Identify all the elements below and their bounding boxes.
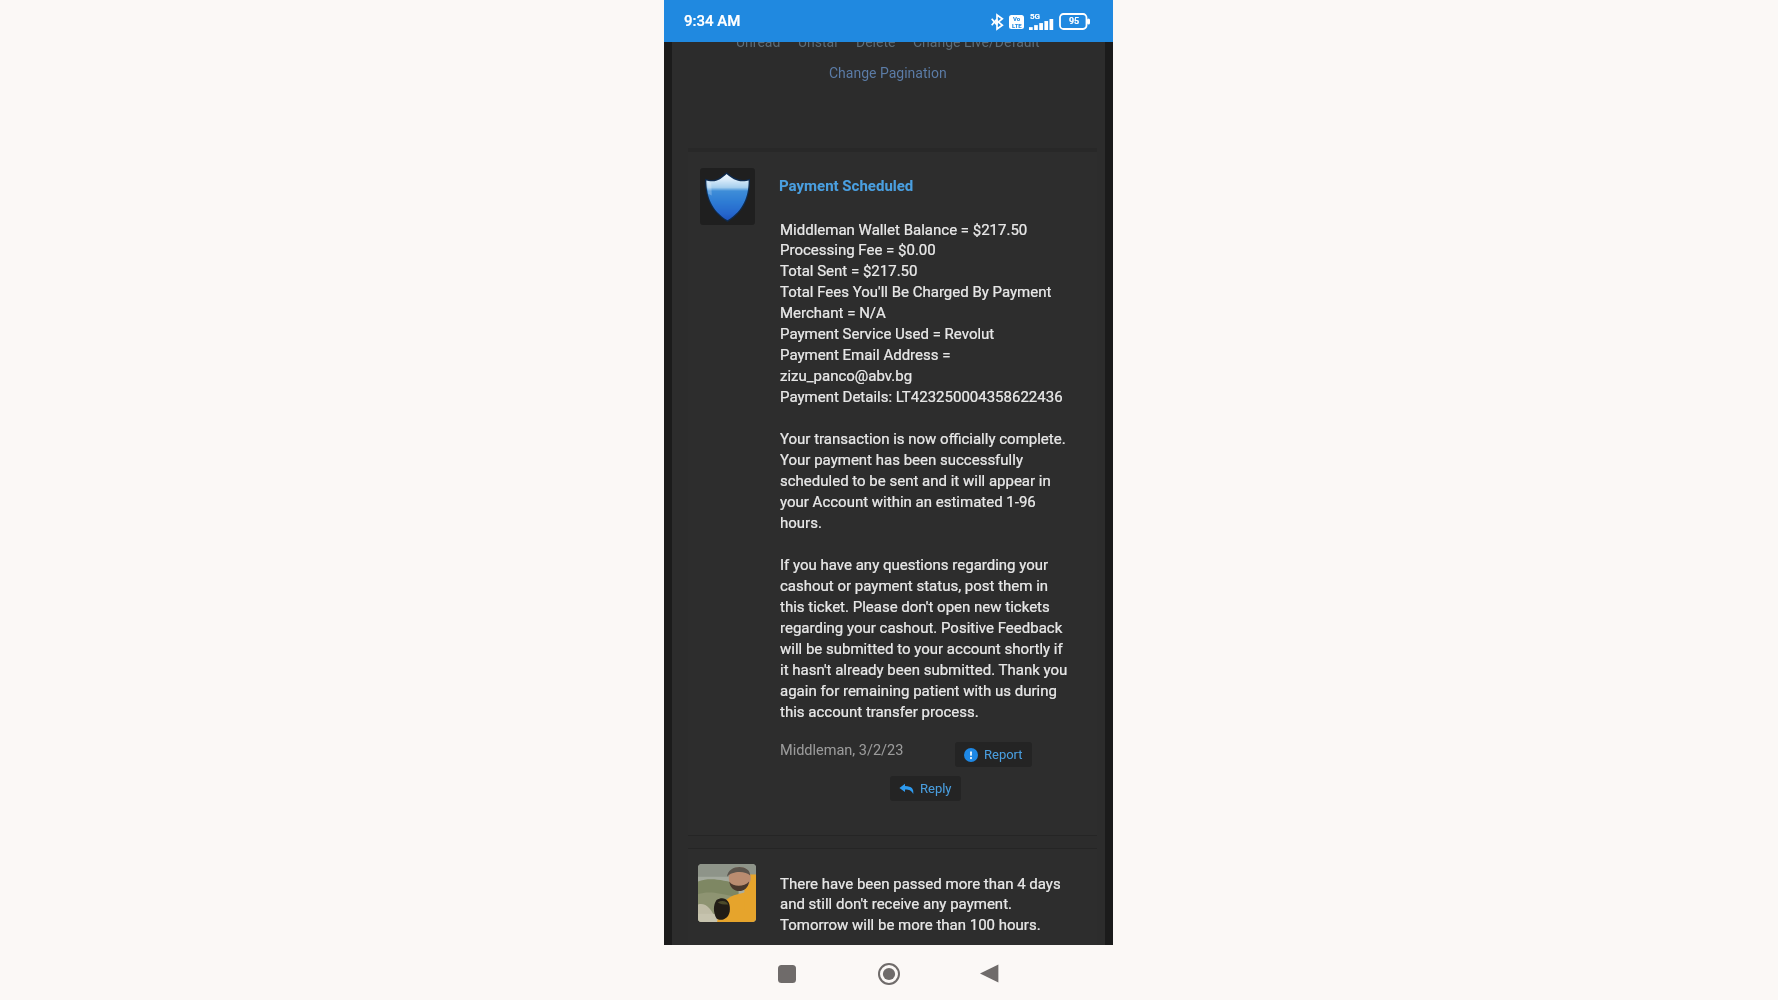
button[interactable]: Reply: [890, 776, 961, 801]
staticText: Reply: [920, 781, 952, 796]
button[interactable]: Recents: [765, 952, 808, 995]
staticText: 9:34 AM: [684, 12, 741, 30]
button[interactable]: Middleman profile picture: [700, 168, 755, 225]
staticText: 95: [1069, 16, 1080, 27]
button[interactable]: Unread: [736, 34, 781, 50]
button[interactable]: There have been passed more than 4 days …: [780, 875, 1061, 934]
staticText: 5G: [1030, 12, 1040, 21]
staticText: LTE: [1012, 22, 1022, 29]
button[interactable]: Middleman, 3/2/23: [780, 742, 904, 759]
staticText: Vo: [1013, 15, 1021, 22]
button[interactable]: Home: [867, 952, 910, 995]
button[interactable]: Change Live/Default: [913, 34, 1040, 50]
button[interactable]: Back: [967, 952, 1010, 995]
staticText: Report: [984, 747, 1023, 762]
button[interactable]: User profile picture: [698, 864, 756, 922]
button[interactable]: Change Pagination: [829, 65, 947, 81]
button[interactable]: Delete: [856, 34, 896, 50]
button[interactable]: Unstar: [798, 34, 839, 50]
button[interactable]: Payment Scheduled: [779, 177, 914, 195]
button[interactable]: Middleman Wallet Balance = $217.50 Proce…: [780, 221, 1080, 721]
button[interactable]: Report: [955, 742, 1032, 767]
